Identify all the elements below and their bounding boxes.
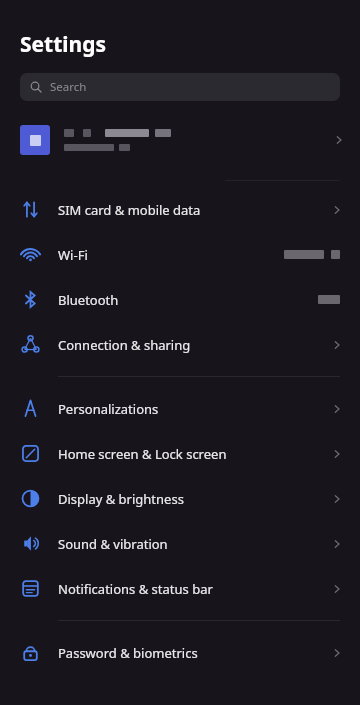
staticText: Personalizations xyxy=(58,400,330,418)
staticText: Bluetooth xyxy=(58,291,318,309)
button[interactable] xyxy=(0,117,360,163)
button[interactable]: Connection & sharing xyxy=(0,322,360,367)
button[interactable]: Bluetooth xyxy=(0,277,360,322)
button[interactable]: Password & biometrics xyxy=(0,630,360,675)
button[interactable]: Home screen & Lock screen xyxy=(0,431,360,476)
button[interactable]: Personalizations xyxy=(0,386,360,431)
staticText: SIM card & mobile data xyxy=(58,201,330,219)
staticText: Search xyxy=(50,79,87,95)
staticText: Connection & sharing xyxy=(58,336,330,354)
button[interactable]: Display & brightness xyxy=(0,476,360,521)
button[interactable]: Search xyxy=(20,73,340,101)
button[interactable]: Notifications & status bar xyxy=(0,566,360,611)
staticText: Settings xyxy=(20,30,107,59)
button[interactable]: Wi-Fi xyxy=(0,232,360,277)
staticText: Wi-Fi xyxy=(58,246,284,264)
staticText: Password & biometrics xyxy=(58,644,330,662)
staticText: Home screen & Lock screen xyxy=(58,445,330,463)
button[interactable]: Sound & vibration xyxy=(0,521,360,566)
staticText: Notifications & status bar xyxy=(58,580,330,598)
staticText: Sound & vibration xyxy=(58,535,330,553)
staticText: Display & brightness xyxy=(58,490,330,508)
button[interactable]: SIM card & mobile data xyxy=(0,187,360,232)
